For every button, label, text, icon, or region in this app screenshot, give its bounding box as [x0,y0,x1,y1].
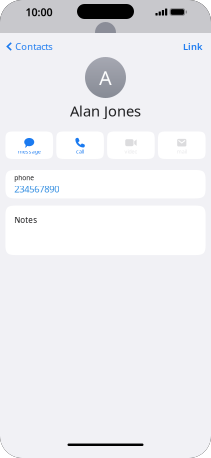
button[interactable]: mail [158,131,205,159]
button[interactable]: phone [5,170,206,198]
staticText: A [99,64,112,91]
staticText: Alan Jones [70,101,141,120]
staticText: mail [177,148,187,155]
button[interactable]: call [56,131,104,159]
button[interactable]: video [107,131,155,159]
button[interactable]: Link [178,37,211,56]
button[interactable]: Notes [5,206,206,255]
staticText: call [76,148,84,155]
staticText: Contacts [15,40,52,53]
staticText: message [18,148,41,155]
staticText: phone [14,173,34,182]
staticText: Notes [14,215,37,225]
staticText: Link [183,40,202,53]
staticText: 234567890 [14,183,59,195]
staticText: video [124,148,137,155]
button[interactable]: Contacts [0,37,57,56]
staticText: 10:00 [25,5,52,19]
button[interactable]: message [5,131,53,159]
